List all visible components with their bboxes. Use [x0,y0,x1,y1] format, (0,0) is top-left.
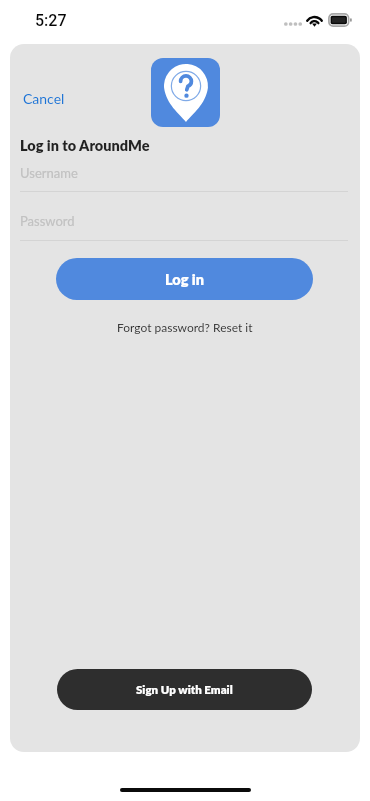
staticText: Username [20,165,78,181]
staticText: Password [20,213,75,229]
button[interactable]: Password [20,206,348,240]
button[interactable]: Sign Up with Email [57,669,312,710]
staticText: Sign Up with Email [136,683,233,697]
other: AroundMe logo [151,58,220,127]
button[interactable]: Username [20,158,348,192]
staticText: Cancel [23,90,65,107]
button[interactable]: Log in [56,258,313,300]
staticText: Log in to AroundMe [20,137,150,154]
staticText: 5:27 [35,11,67,30]
button[interactable]: Cancel [13,82,75,115]
staticText: Log in [165,271,204,288]
staticText: Forgot password? Reset it [117,320,253,334]
button[interactable]: Forgot password? Reset it [10,320,360,334]
